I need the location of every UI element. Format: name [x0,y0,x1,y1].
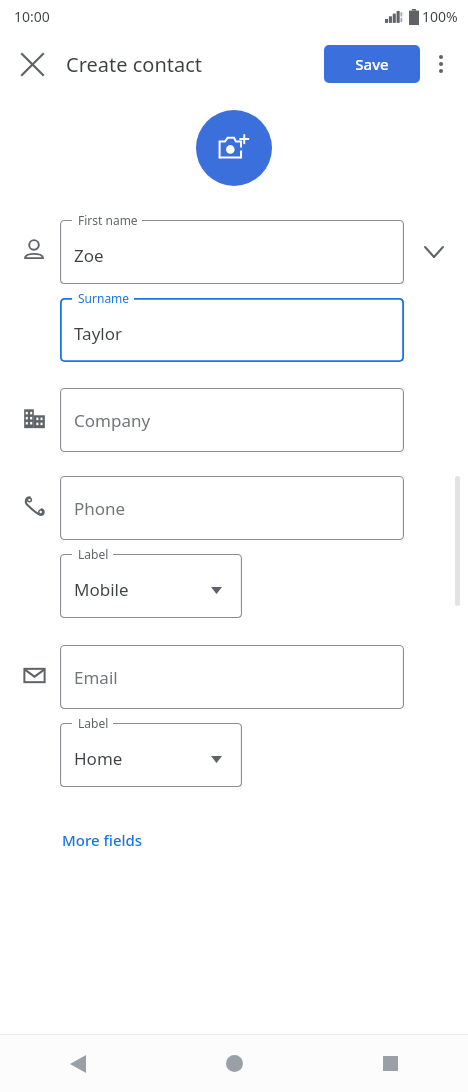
staticText: 100% [422,7,458,26]
button[interactable]: Save [324,45,420,83]
button[interactable]: Label [60,554,242,618]
button[interactable]: Phone [60,476,404,540]
button[interactable]: Home [156,1035,312,1092]
staticText: Label [78,546,109,562]
staticText: Company [74,409,151,432]
staticText: Save [355,54,389,74]
button[interactable]: Company [60,388,404,452]
button[interactable]: Surname [60,298,404,362]
staticText: Surname [78,290,130,306]
button[interactable]: More options [420,43,462,85]
staticText: More fields [62,830,143,850]
button[interactable]: Email [60,645,404,709]
button[interactable]: Close [10,42,54,86]
button[interactable]: Expand name fields [416,234,452,270]
staticText: Taylor [74,322,122,345]
button[interactable]: Recent apps [312,1035,468,1092]
staticText: 10:00 [14,7,50,26]
staticText: Label [78,715,109,731]
staticText: Zoe [74,244,104,267]
staticText: Mobile [74,578,129,601]
button[interactable]: First name [60,220,404,284]
button[interactable]: Back [0,1035,156,1092]
staticText: Phone [74,497,126,520]
button[interactable]: Label [60,723,242,787]
staticText: Home [74,747,123,770]
staticText: Create contact [66,51,203,78]
staticText: First name [78,212,138,228]
button[interactable]: Add photo [196,110,272,186]
button[interactable]: More fields [62,830,143,850]
staticText: Email [74,666,118,689]
